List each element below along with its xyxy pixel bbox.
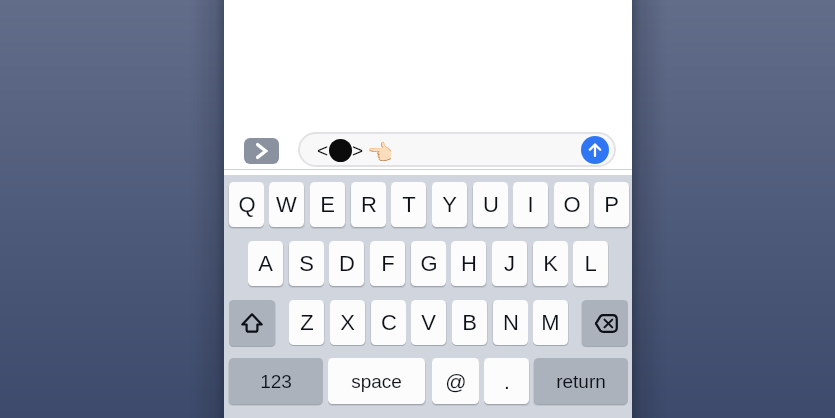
button[interactable]: M bbox=[533, 300, 568, 345]
staticText: J bbox=[504, 251, 515, 276]
staticText: P bbox=[604, 192, 619, 217]
button[interactable]: J bbox=[492, 241, 527, 286]
button[interactable]: P bbox=[594, 182, 629, 227]
button[interactable]: O bbox=[554, 182, 589, 227]
button[interactable]: R bbox=[351, 182, 386, 227]
button[interactable]: Send bbox=[581, 136, 609, 164]
staticText: V bbox=[421, 310, 436, 335]
staticText: M bbox=[541, 310, 560, 335]
staticText: L bbox=[584, 251, 597, 276]
button[interactable]: V bbox=[411, 300, 446, 345]
staticText: H bbox=[461, 251, 477, 276]
button[interactable]: < bbox=[298, 132, 616, 167]
button[interactable]: space bbox=[328, 358, 425, 404]
button[interactable]: W bbox=[269, 182, 304, 227]
staticText: C bbox=[381, 310, 397, 335]
staticText: 123 bbox=[260, 371, 292, 392]
staticText: S bbox=[299, 251, 314, 276]
button[interactable]: Expand toolbar bbox=[244, 138, 279, 164]
button[interactable]: B bbox=[452, 300, 487, 345]
staticText: @ bbox=[445, 370, 467, 393]
staticText: I bbox=[527, 192, 534, 217]
button[interactable]: L bbox=[573, 241, 608, 286]
staticText: > bbox=[352, 140, 364, 161]
button[interactable]: 123 bbox=[229, 358, 323, 404]
button[interactable]: D bbox=[329, 241, 364, 286]
staticText: R bbox=[361, 192, 377, 217]
button[interactable]: Q bbox=[229, 182, 264, 227]
button[interactable]: F bbox=[370, 241, 405, 286]
staticText: Z bbox=[300, 310, 314, 335]
staticText: D bbox=[339, 251, 355, 276]
button[interactable]: U bbox=[473, 182, 508, 227]
button[interactable]: A bbox=[248, 241, 283, 286]
staticText: T bbox=[402, 192, 416, 217]
button[interactable]: Backspace bbox=[582, 300, 628, 346]
button[interactable]: return bbox=[534, 358, 628, 404]
staticText: return bbox=[556, 371, 606, 392]
button[interactable]: E bbox=[310, 182, 345, 227]
button[interactable]: Shift bbox=[229, 300, 275, 346]
staticText: Q bbox=[238, 192, 256, 217]
button[interactable]: N bbox=[493, 300, 528, 345]
staticText: Y bbox=[442, 192, 457, 217]
button[interactable]: X bbox=[330, 300, 365, 345]
button[interactable]: @ bbox=[432, 358, 479, 404]
staticText: 👈🏻 bbox=[367, 140, 391, 164]
staticText: K bbox=[543, 251, 558, 276]
staticText: < bbox=[317, 140, 329, 161]
staticText: B bbox=[462, 310, 477, 335]
button[interactable]: I bbox=[513, 182, 548, 227]
button[interactable]: H bbox=[451, 241, 486, 286]
staticText: space bbox=[351, 371, 402, 392]
button[interactable]: . bbox=[484, 358, 529, 404]
button[interactable]: Z bbox=[289, 300, 324, 345]
staticText: N bbox=[503, 310, 519, 335]
button[interactable]: G bbox=[411, 241, 446, 286]
staticText: F bbox=[381, 251, 395, 276]
staticText: G bbox=[420, 251, 438, 276]
button[interactable]: C bbox=[371, 300, 406, 345]
button[interactable]: S bbox=[289, 241, 324, 286]
staticText: A bbox=[258, 251, 273, 276]
staticText: . bbox=[504, 370, 510, 393]
staticText: W bbox=[276, 192, 297, 217]
staticText: U bbox=[483, 192, 499, 217]
button[interactable]: K bbox=[533, 241, 568, 286]
staticText: E bbox=[320, 192, 335, 217]
button[interactable]: T bbox=[391, 182, 426, 227]
staticText: X bbox=[340, 310, 355, 335]
staticText: O bbox=[563, 192, 581, 217]
button[interactable]: Y bbox=[432, 182, 467, 227]
